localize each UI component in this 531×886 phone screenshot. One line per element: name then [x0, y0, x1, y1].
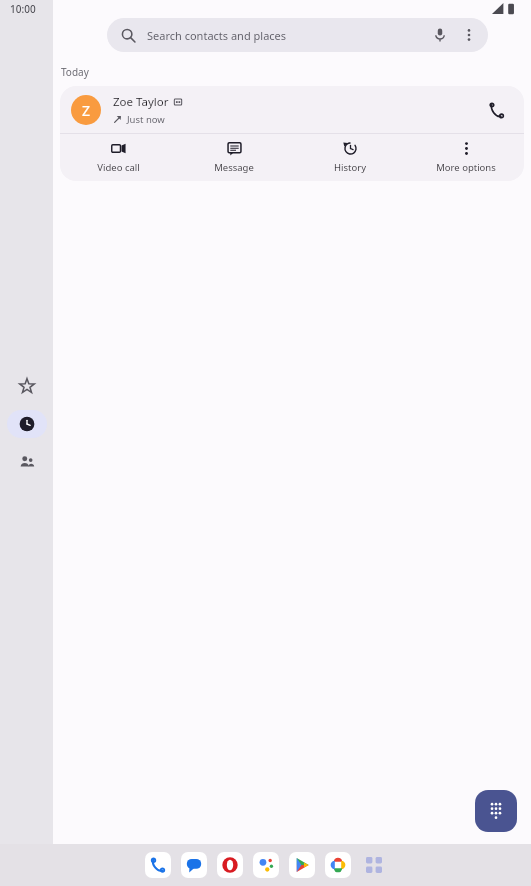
- staticText: 10:00: [10, 2, 36, 16]
- staticText: Message: [214, 161, 254, 174]
- staticText: More options: [436, 161, 496, 174]
- staticText: Z: [82, 101, 91, 120]
- button[interactable]: Phone: [145, 852, 171, 878]
- button[interactable]: Favorites: [7, 372, 47, 400]
- button[interactable]: Video call: [60, 134, 176, 181]
- staticText: Zoe Taylor: [113, 94, 169, 110]
- button[interactable]: Play Store: [289, 852, 315, 878]
- staticText: Just now: [127, 113, 165, 126]
- button[interactable]: Message: [176, 134, 292, 181]
- button[interactable]: More options: [456, 22, 482, 48]
- button[interactable]: Messages: [181, 852, 207, 878]
- staticText: Today: [61, 65, 89, 79]
- button[interactable]: Recents: [7, 410, 47, 438]
- button[interactable]: More options: [408, 134, 524, 181]
- staticText: Video call: [97, 161, 140, 174]
- button[interactable]: Search contacts and places: [107, 18, 488, 52]
- staticText: Search contacts and places: [147, 28, 287, 43]
- button[interactable]: Photos: [325, 852, 351, 878]
- staticText: History: [334, 161, 366, 174]
- button[interactable]: All apps: [361, 852, 387, 878]
- button[interactable]: Google: [253, 852, 279, 878]
- button[interactable]: Opera: [217, 852, 243, 878]
- button[interactable]: Z: [60, 86, 524, 133]
- button[interactable]: Voice search: [427, 22, 453, 48]
- button[interactable]: Dialpad: [475, 790, 517, 832]
- button[interactable]: Contacts: [7, 448, 47, 476]
- button[interactable]: History: [292, 134, 408, 181]
- button[interactable]: Call Zoe Taylor: [478, 91, 516, 129]
